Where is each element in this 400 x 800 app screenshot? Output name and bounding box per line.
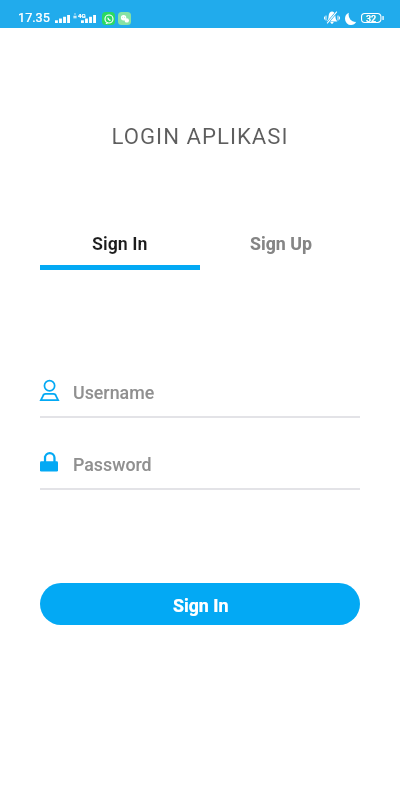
- staticText: 17.35: [18, 10, 50, 25]
- staticText: Username: [73, 382, 155, 403]
- staticText: Password: [73, 454, 152, 475]
- staticText: LOGIN APLIKASI: [111, 123, 289, 149]
- staticText: 32: [366, 14, 377, 24]
- staticText: Sign In: [92, 233, 148, 254]
- button[interactable]: Sign In: [40, 583, 360, 625]
- other: Do not disturb: [345, 12, 357, 25]
- other: Silent mode: [324, 11, 340, 24]
- staticText: Sign Up: [250, 233, 312, 254]
- button[interactable]: Password: [0, 444, 400, 490]
- button[interactable]: Username: [0, 372, 400, 418]
- button[interactable]: Sign In: [40, 217, 200, 270]
- staticText: Sign In: [173, 595, 229, 616]
- button[interactable]: Sign Up: [201, 217, 361, 270]
- staticText: 4G: [78, 12, 86, 19]
